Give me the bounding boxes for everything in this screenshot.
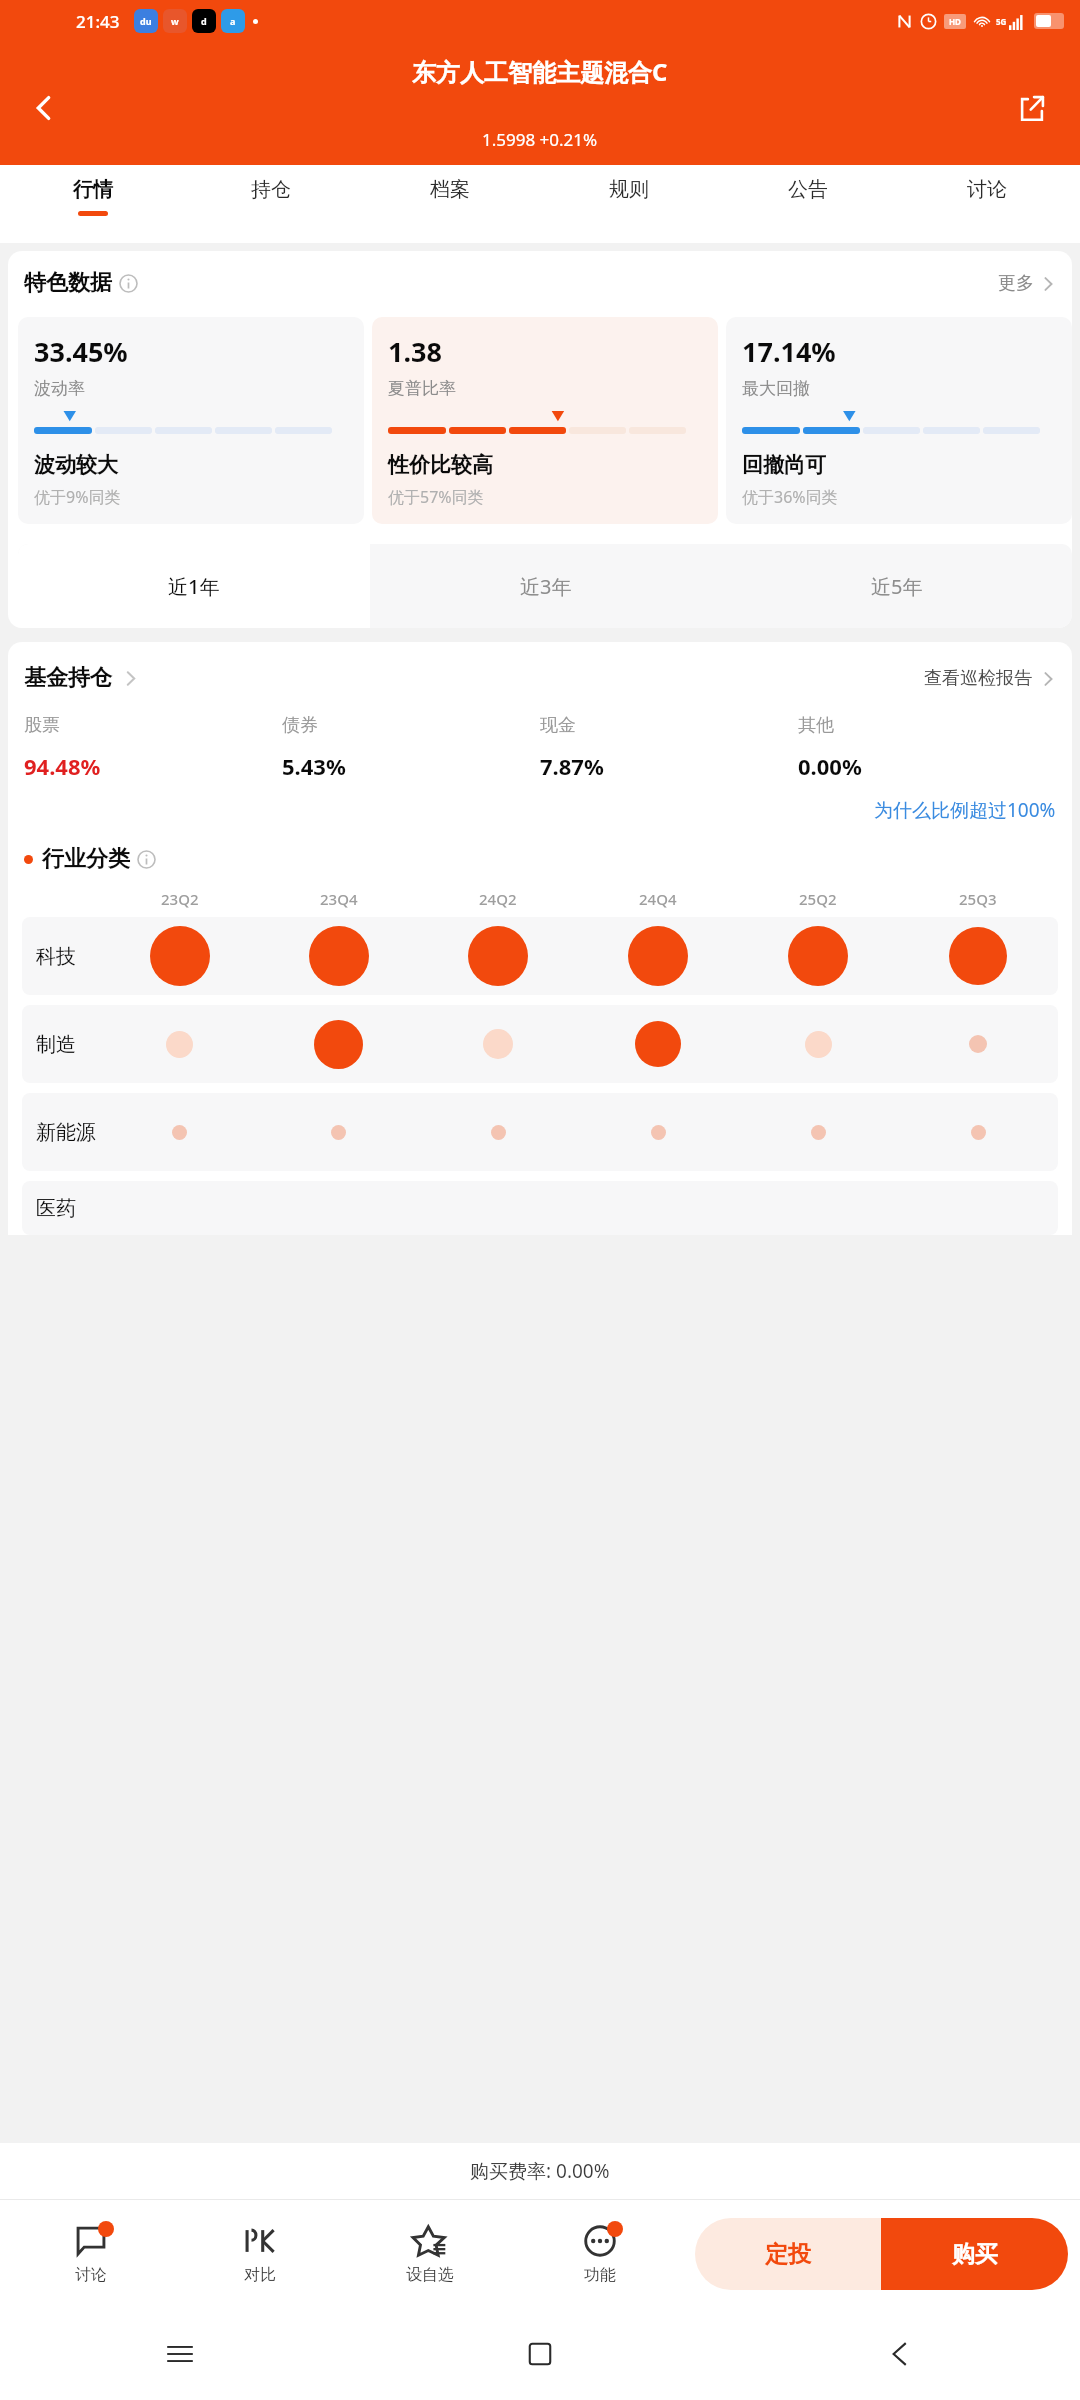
button[interactable]: 近3年 xyxy=(370,544,721,628)
staticText: a xyxy=(230,15,236,27)
button[interactable]: 持仓 xyxy=(182,165,360,243)
button[interactable]: 17.14% xyxy=(726,317,1072,524)
staticText: 功能 xyxy=(584,2265,616,2285)
staticText: 科技 xyxy=(36,944,76,969)
staticText: 17.14% xyxy=(742,333,836,370)
button[interactable]: back xyxy=(720,2308,1080,2400)
staticText: 购买 xyxy=(952,2240,998,2269)
staticText: 医药 xyxy=(36,1196,76,1221)
staticText: 24Q2 xyxy=(479,889,517,909)
button[interactable]: 定投 xyxy=(695,2218,881,2290)
button[interactable]: 讨论 xyxy=(897,165,1076,243)
button[interactable]: 功能 xyxy=(515,2200,685,2308)
staticText: d xyxy=(201,15,207,27)
staticText: 33.45% xyxy=(34,333,128,370)
button[interactable]: 33.45% xyxy=(18,317,364,524)
button[interactable]: 设自选 xyxy=(345,2200,515,2308)
staticText: du xyxy=(140,15,152,27)
button[interactable]: 科技 xyxy=(22,917,1058,995)
staticText: 优于36%同类 xyxy=(742,486,838,508)
staticText: 1.5998 +0.21% xyxy=(482,128,598,151)
staticText: 债券 xyxy=(282,714,318,737)
staticText: 23Q4 xyxy=(320,889,358,909)
staticText: 性价比较高 xyxy=(388,452,493,478)
button[interactable]: Back xyxy=(18,82,70,134)
button[interactable]: 基金持仓 xyxy=(24,664,139,692)
staticText: 购买费率: 0.00% xyxy=(470,2158,610,2184)
button[interactable]: 近5年 xyxy=(721,544,1072,628)
staticText: 23Q2 xyxy=(161,889,199,909)
staticText: 94.48% xyxy=(24,751,101,781)
staticText: 其他 xyxy=(798,714,834,737)
staticText: 行业分类 xyxy=(42,845,130,873)
staticText: 定投 xyxy=(765,2240,811,2269)
button[interactable]: 新能源 xyxy=(22,1093,1058,1171)
staticText: 基金持仓 xyxy=(24,664,112,692)
staticText: 近1年 xyxy=(168,573,220,600)
staticText: 21:43 xyxy=(76,10,120,33)
staticText: 新能源 xyxy=(36,1120,96,1145)
button[interactable]: 医药 xyxy=(22,1181,1058,1235)
staticText: 5.43% xyxy=(282,751,346,781)
button[interactable]: 更多 xyxy=(998,272,1056,295)
staticText: 25Q2 xyxy=(799,889,837,909)
button[interactable]: 档案 xyxy=(360,165,539,243)
button[interactable]: menu xyxy=(0,2308,360,2400)
staticText: 讨论 xyxy=(75,2265,107,2285)
staticText: 查看巡检报告 xyxy=(924,667,1032,690)
staticText: 对比 xyxy=(244,2265,276,2285)
staticText: 25Q3 xyxy=(959,889,997,909)
staticText: 1.38 xyxy=(388,333,442,370)
button[interactable]: 近1年 xyxy=(18,544,370,628)
staticText: 近5年 xyxy=(871,573,923,600)
staticText: 回撤尚可 xyxy=(742,452,826,478)
staticText: 持仓 xyxy=(251,177,291,202)
button[interactable]: Share xyxy=(1006,82,1058,134)
button[interactable]: 行情 xyxy=(4,165,182,243)
staticText: 优于57%同类 xyxy=(388,486,484,508)
button[interactable]: 购买 xyxy=(881,2218,1068,2290)
button[interactable]: 规则 xyxy=(539,165,718,243)
staticText: 特色数据 xyxy=(24,269,112,297)
button[interactable]: home xyxy=(360,2308,720,2400)
staticText: 讨论 xyxy=(967,177,1007,202)
staticText: 行情 xyxy=(73,177,113,202)
staticText: 设自选 xyxy=(406,2265,454,2285)
button[interactable]: 查看巡检报告 xyxy=(924,667,1056,690)
staticText: 规则 xyxy=(609,177,649,202)
button[interactable]: 讨论 xyxy=(6,2200,175,2308)
staticText: 现金 xyxy=(540,714,576,737)
staticText: 24Q4 xyxy=(639,889,677,909)
staticText: 0.00% xyxy=(798,751,862,781)
staticText: 为什么比例超过100% xyxy=(874,797,1056,823)
staticText: 公告 xyxy=(788,177,828,202)
button[interactable]: 1.38 xyxy=(372,317,718,524)
button[interactable]: 制造 xyxy=(22,1005,1058,1083)
staticText: 股票 xyxy=(24,714,60,737)
button[interactable]: 对比 xyxy=(175,2200,345,2308)
staticText: 档案 xyxy=(430,177,470,202)
staticText: 更多 xyxy=(998,272,1034,295)
staticText: HD xyxy=(949,16,961,27)
staticText: 近3年 xyxy=(520,573,572,600)
button[interactable]: 公告 xyxy=(718,165,897,243)
staticText: w xyxy=(171,15,179,27)
staticText: 波动较大 xyxy=(34,452,118,478)
button[interactable]: 为什么比例超过100% xyxy=(874,797,1056,823)
staticText: 夏普比率 xyxy=(388,378,456,399)
staticText: 制造 xyxy=(36,1032,76,1057)
staticText: 优于9%同类 xyxy=(34,486,121,508)
staticText: 波动率 xyxy=(34,378,85,399)
staticText: 最大回撤 xyxy=(742,378,810,399)
staticText: 东方人工智能主题混合C xyxy=(412,55,668,88)
staticText: 7.87% xyxy=(540,751,604,781)
staticText: 5G xyxy=(996,16,1007,27)
